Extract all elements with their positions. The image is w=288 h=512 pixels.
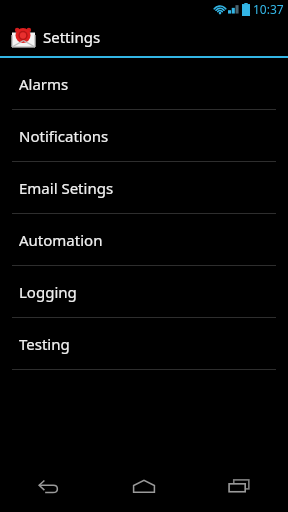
staticText: 10:37	[253, 1, 284, 17]
button[interactable]: Alarms	[0, 58, 288, 109]
staticText: Automation	[19, 230, 103, 250]
staticText: Settings	[43, 27, 101, 47]
staticText: Testing	[19, 334, 70, 354]
button[interactable]: Recent apps	[192, 460, 288, 512]
button[interactable]: Logging	[0, 266, 288, 317]
button[interactable]: Automation	[0, 214, 288, 265]
staticText: Alarms	[19, 74, 69, 94]
button[interactable]: Home	[96, 460, 192, 512]
button[interactable]: Testing	[0, 318, 288, 369]
button[interactable]: Email Setings	[0, 162, 288, 213]
button[interactable]: Notifications	[0, 110, 288, 161]
button[interactable]: Back	[0, 460, 96, 512]
staticText: Logging	[19, 282, 77, 302]
staticText: Notifications	[19, 126, 109, 146]
staticText: Email Setings	[19, 178, 114, 198]
